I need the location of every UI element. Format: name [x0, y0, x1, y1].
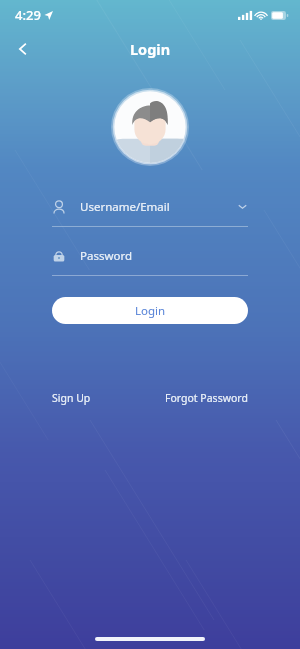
button[interactable]: Password: [52, 242, 248, 276]
staticText: 4:29: [15, 6, 41, 24]
button[interactable]: Back: [5, 31, 41, 67]
staticText: Username/Email: [80, 199, 170, 215]
staticText: Password: [80, 248, 133, 264]
staticText: Login: [135, 303, 166, 319]
button[interactable]: Forgot Password: [165, 387, 248, 409]
button[interactable]: Username/Email: [52, 193, 248, 227]
staticText: Sign Up: [52, 391, 91, 405]
staticText: Forgot Password: [165, 391, 248, 405]
button[interactable]: Sign Up: [52, 387, 91, 409]
button[interactable]: Login: [52, 297, 248, 324]
staticText: Login: [130, 39, 171, 59]
